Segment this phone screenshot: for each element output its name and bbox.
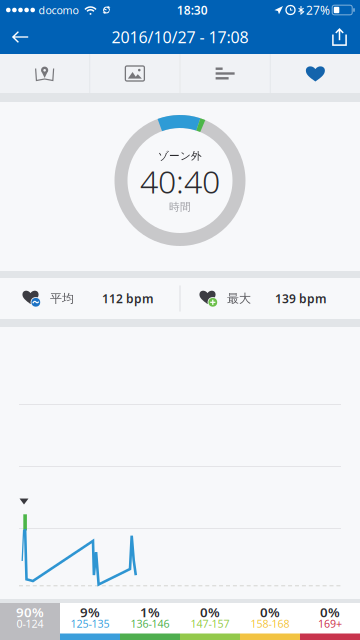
staticText: 136-146 [130,616,169,631]
staticText: 40:40 [140,160,220,202]
staticText: 125-135 [70,616,109,631]
staticText: 112 bpm [102,290,154,306]
button[interactable]: Heart rate [271,54,360,93]
staticText: 0% [260,603,280,621]
button[interactable]: 0% [240,603,300,640]
staticText: 0-124 [16,616,43,631]
button[interactable]: Share [316,21,360,53]
staticText: 2016/10/27 - 17:08 [111,26,248,48]
button[interactable]: Map [0,54,89,93]
staticText: 139 bpm [275,290,327,306]
staticText: 9% [80,603,100,621]
staticText: 147-157 [190,616,229,631]
button[interactable]: 90% [0,603,60,640]
staticText: ゾーン外 [158,149,202,162]
button[interactable]: 0% [180,603,240,640]
button[interactable]: 0% [300,603,360,640]
button[interactable]: Statistics [180,54,270,93]
staticText: 1% [140,603,160,621]
button[interactable]: Back [0,20,45,53]
staticText: 0% [320,603,340,621]
staticText: 158-168 [250,616,289,631]
staticText: 18:30 [177,2,208,18]
staticText: 時間 [169,200,191,213]
staticText: 0% [200,603,220,621]
staticText: docomo [38,3,78,17]
staticText: 27% [306,2,330,18]
button[interactable]: Photos [90,54,179,93]
button[interactable]: 1% [120,603,180,640]
staticText: 最大 [227,291,251,306]
staticText: 169+ [318,616,342,631]
button[interactable]: 9% [60,603,120,640]
staticText: 平均 [50,291,74,306]
staticText: 90% [16,603,44,621]
